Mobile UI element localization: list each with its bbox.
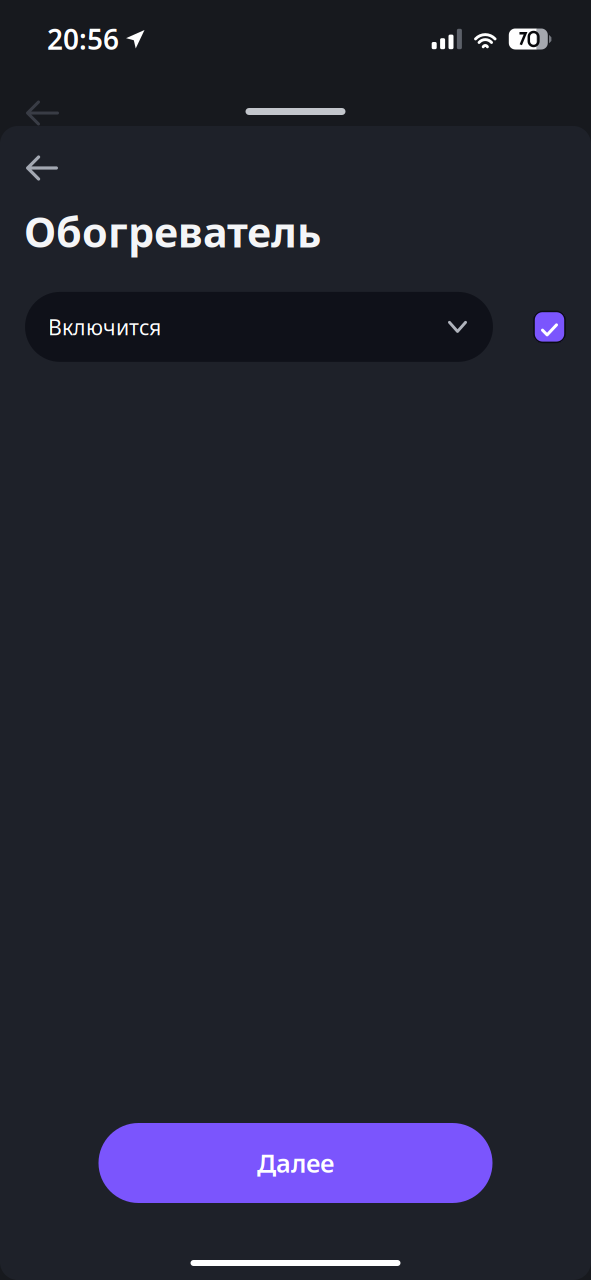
staticText: Обогреватель — [24, 204, 321, 259]
button[interactable]: Назад — [0, 126, 76, 191]
staticText: Включится — [48, 313, 161, 341]
button[interactable]: Далее — [98, 1123, 492, 1203]
staticText: 20:56 — [47, 20, 119, 58]
button[interactable]: Подтвердить — [534, 311, 565, 342]
button[interactable]: Включится — [25, 292, 493, 362]
staticText: Далее — [257, 1146, 334, 1180]
